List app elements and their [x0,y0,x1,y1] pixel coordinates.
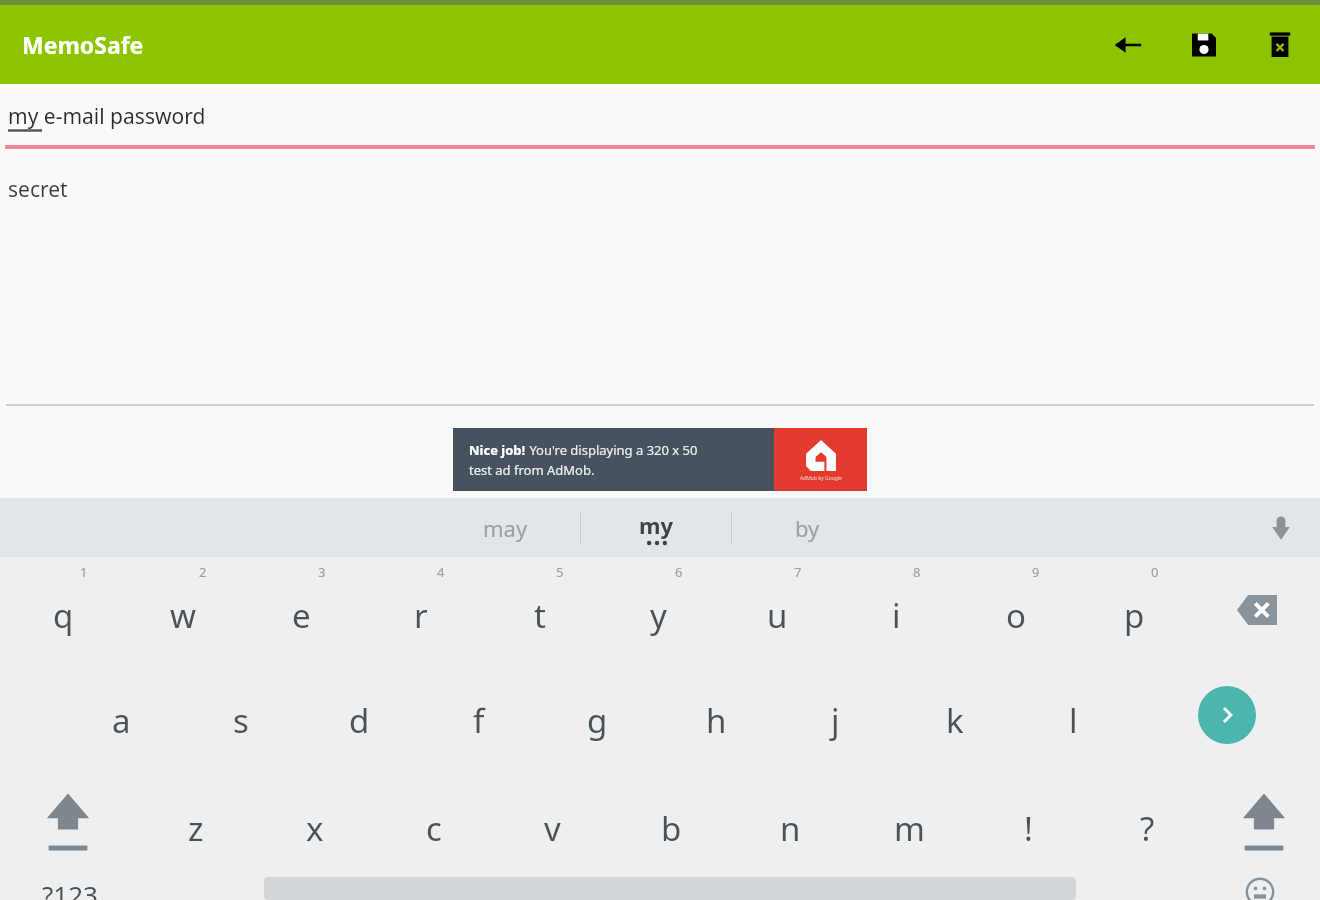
staticText: ? [1140,806,1155,851]
button[interactable]: h [657,662,776,767]
staticText: g [587,698,608,743]
button[interactable]: Delete [1258,23,1302,67]
staticText: You're displaying a 320 x 50 [526,441,698,459]
button[interactable]: 7 [718,557,837,662]
button[interactable]: v [493,770,612,875]
staticText: x [306,806,324,851]
staticText: may [483,513,528,543]
staticText: f [473,698,485,743]
staticText: 8 [913,563,921,581]
button[interactable]: f [419,662,538,767]
staticText: e [292,593,311,638]
button[interactable]: j [776,662,895,767]
button[interactable]: b [612,770,731,875]
button[interactable]: x [255,770,374,875]
staticText: u [767,593,788,638]
button[interactable]: by [732,498,882,557]
staticText: o [1006,593,1026,638]
staticText: 7 [794,563,802,581]
button[interactable]: may [430,498,580,557]
staticText: MemoSafe [22,29,144,60]
staticText: Nice job! [469,441,526,459]
button[interactable]: Nice job! [453,428,867,491]
button[interactable]: l [1014,662,1133,767]
button[interactable]: 6 [599,557,718,662]
staticText: s [233,698,249,743]
staticText: l [1069,698,1078,743]
staticText: test ad from AdMob. [469,461,595,479]
button[interactable]: k [895,662,1014,767]
staticText: 9 [1032,563,1040,581]
staticText: ! [1024,806,1033,851]
button[interactable]: Back [1106,23,1150,67]
staticText: c [426,806,442,851]
button[interactable]: ?123 [0,877,140,900]
staticText: y [650,593,667,638]
staticText: v [544,806,561,851]
button[interactable]: Voice input [1258,505,1304,551]
button[interactable]: m [850,770,969,875]
staticText: i [892,593,901,638]
button[interactable]: my [581,498,731,557]
button[interactable]: ! [969,770,1088,875]
button[interactable]: 4 [361,557,480,662]
button[interactable]: c [374,770,493,875]
staticText: d [349,698,370,743]
staticText: p [1124,593,1145,638]
staticText: t [534,593,546,638]
staticText: my e-mail password [8,102,206,131]
button[interactable]: 5 [480,557,599,662]
staticText: 2 [199,563,207,581]
staticText: b [661,806,682,851]
staticText: 3 [318,563,326,581]
button[interactable]: z [136,770,255,875]
button[interactable]: n [731,770,850,875]
button[interactable]: Shift [1207,767,1320,877]
staticText: AdMob by Google [800,475,842,482]
button[interactable]: 9 [956,557,1075,662]
button[interactable]: 1 [4,557,123,662]
staticText: a [112,698,131,743]
button[interactable]: Backspace [1194,557,1320,662]
staticText: by [795,513,820,543]
button[interactable]: ? [1088,770,1207,875]
staticText: 1 [80,563,88,581]
staticText: n [780,806,801,851]
staticText: my [639,510,674,540]
button[interactable]: Shift [0,767,136,877]
staticText: secret [8,175,68,204]
button[interactable]: 8 [837,557,956,662]
staticText: 0 [1151,563,1159,581]
button[interactable]: Save [1182,23,1226,67]
button[interactable]: g [538,662,657,767]
button[interactable]: 2 [123,557,242,662]
staticText: r [414,593,428,638]
staticText: j [831,698,840,743]
staticText: k [946,698,964,743]
button[interactable]: a [62,662,181,767]
staticText: 5 [556,563,564,581]
button[interactable]: d [300,662,419,767]
staticText: 4 [437,563,445,581]
staticText: w [170,593,196,638]
staticText: m [894,806,925,851]
staticText: ?123 [42,877,98,900]
button[interactable]: Emoji [1200,877,1320,900]
staticText: q [53,593,74,638]
staticText: z [188,806,204,851]
button[interactable]: 3 [242,557,361,662]
staticText: h [706,698,727,743]
button[interactable]: 0 [1075,557,1194,662]
staticText: 6 [675,563,683,581]
button[interactable]: Enter [1133,662,1320,767]
button[interactable]: s [181,662,300,767]
